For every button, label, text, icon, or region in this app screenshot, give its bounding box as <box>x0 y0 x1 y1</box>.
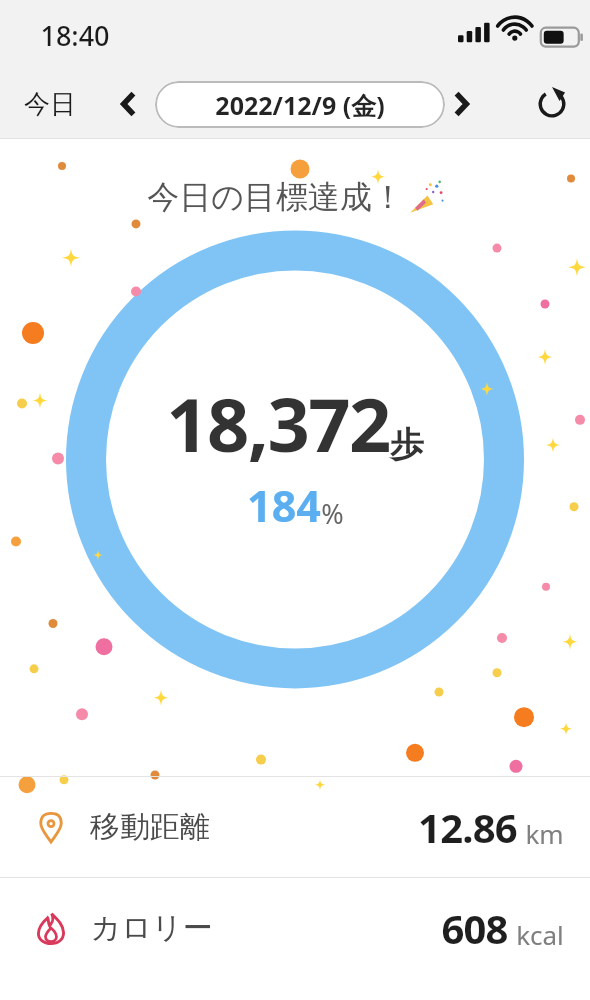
staticText: 歩 <box>390 423 424 466</box>
staticText: km <box>525 816 564 851</box>
staticText: 18:40 <box>40 17 110 54</box>
staticText: 移動距離 <box>90 808 210 846</box>
button[interactable]: Refresh <box>528 80 576 128</box>
button[interactable]: 今日 <box>14 82 86 127</box>
staticText: 608 <box>441 901 508 955</box>
staticText: kcal <box>516 917 564 952</box>
staticText: 12.86 <box>418 800 517 854</box>
staticText: 今日の目標達成！ <box>147 177 404 217</box>
staticText: 2022/12/9 (金) <box>215 88 385 122</box>
staticText: 184 <box>247 476 321 535</box>
staticText: 今日 <box>24 88 76 121</box>
staticText: カロリー <box>90 909 213 947</box>
button[interactable]: 2022/12/9 (金) <box>155 81 445 128</box>
button[interactable]: カロリー <box>0 878 590 978</box>
button[interactable]: 移動距離 <box>0 777 590 877</box>
staticText: % <box>321 495 344 532</box>
staticText: 18,372 <box>166 373 390 474</box>
button[interactable]: Previous day <box>108 84 148 124</box>
button[interactable]: Next day <box>442 84 482 124</box>
